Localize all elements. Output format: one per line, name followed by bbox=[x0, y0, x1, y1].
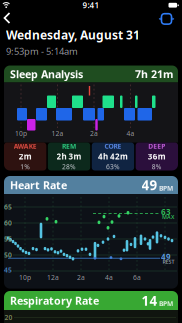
staticText: MAX bbox=[162, 213, 174, 220]
staticText: REST bbox=[162, 258, 174, 265]
staticText: 55 bbox=[4, 235, 12, 243]
button[interactable]: Heart Rate bbox=[4, 176, 178, 194]
staticText: 2h 3m bbox=[56, 151, 81, 162]
button[interactable]: Respiratory Rate bbox=[4, 291, 178, 310]
staticText: 49 bbox=[141, 176, 157, 194]
staticText: Heart Rate bbox=[10, 178, 67, 192]
staticText: 60 bbox=[4, 219, 12, 227]
staticText: 1% bbox=[20, 162, 30, 171]
staticText: 8% bbox=[152, 162, 162, 171]
staticText: 20 bbox=[4, 313, 12, 322]
staticText: 2m bbox=[19, 151, 32, 162]
staticText: 36m bbox=[148, 151, 166, 162]
staticText: 4a bbox=[126, 129, 134, 138]
staticText: Sleep Analysis bbox=[10, 67, 83, 81]
staticText: Respiratory Rate bbox=[10, 293, 99, 308]
staticText: 12a bbox=[51, 129, 63, 138]
staticText: 6a bbox=[133, 273, 141, 282]
staticText: 45 bbox=[4, 266, 12, 274]
staticText: DEEP bbox=[148, 142, 165, 151]
button[interactable]: Apple Watch bbox=[155, 12, 177, 26]
staticText: 14 bbox=[141, 292, 157, 309]
button[interactable]: Sleep Analysis bbox=[4, 65, 178, 82]
staticText: AWAKE bbox=[14, 142, 37, 151]
staticText: 2a bbox=[77, 273, 85, 282]
staticText: 2a bbox=[90, 129, 98, 138]
staticText: 12a bbox=[47, 273, 59, 282]
staticText: 4h 42m bbox=[98, 151, 128, 162]
staticText: REM bbox=[62, 142, 76, 151]
staticText: 4a bbox=[105, 273, 113, 282]
staticText: CORE bbox=[104, 142, 121, 151]
button[interactable]: Back bbox=[2, 11, 14, 24]
staticText: 63 bbox=[161, 207, 171, 217]
staticText: 50 bbox=[4, 251, 12, 259]
staticText: 65 bbox=[4, 203, 12, 211]
staticText: BPM bbox=[159, 184, 173, 193]
staticText: 7h 21m bbox=[135, 67, 173, 81]
staticText: BPM bbox=[159, 299, 173, 308]
staticText: 63% bbox=[106, 162, 120, 171]
staticText: 9:53pm - 5:14am bbox=[6, 45, 78, 57]
staticText: 9:41 bbox=[82, 0, 99, 10]
staticText: Wednesday, August 31 bbox=[6, 27, 140, 43]
staticText: 10p bbox=[19, 273, 31, 282]
staticText: 10p bbox=[15, 129, 27, 138]
staticText: 49 bbox=[161, 251, 171, 262]
staticText: 28% bbox=[62, 162, 76, 171]
